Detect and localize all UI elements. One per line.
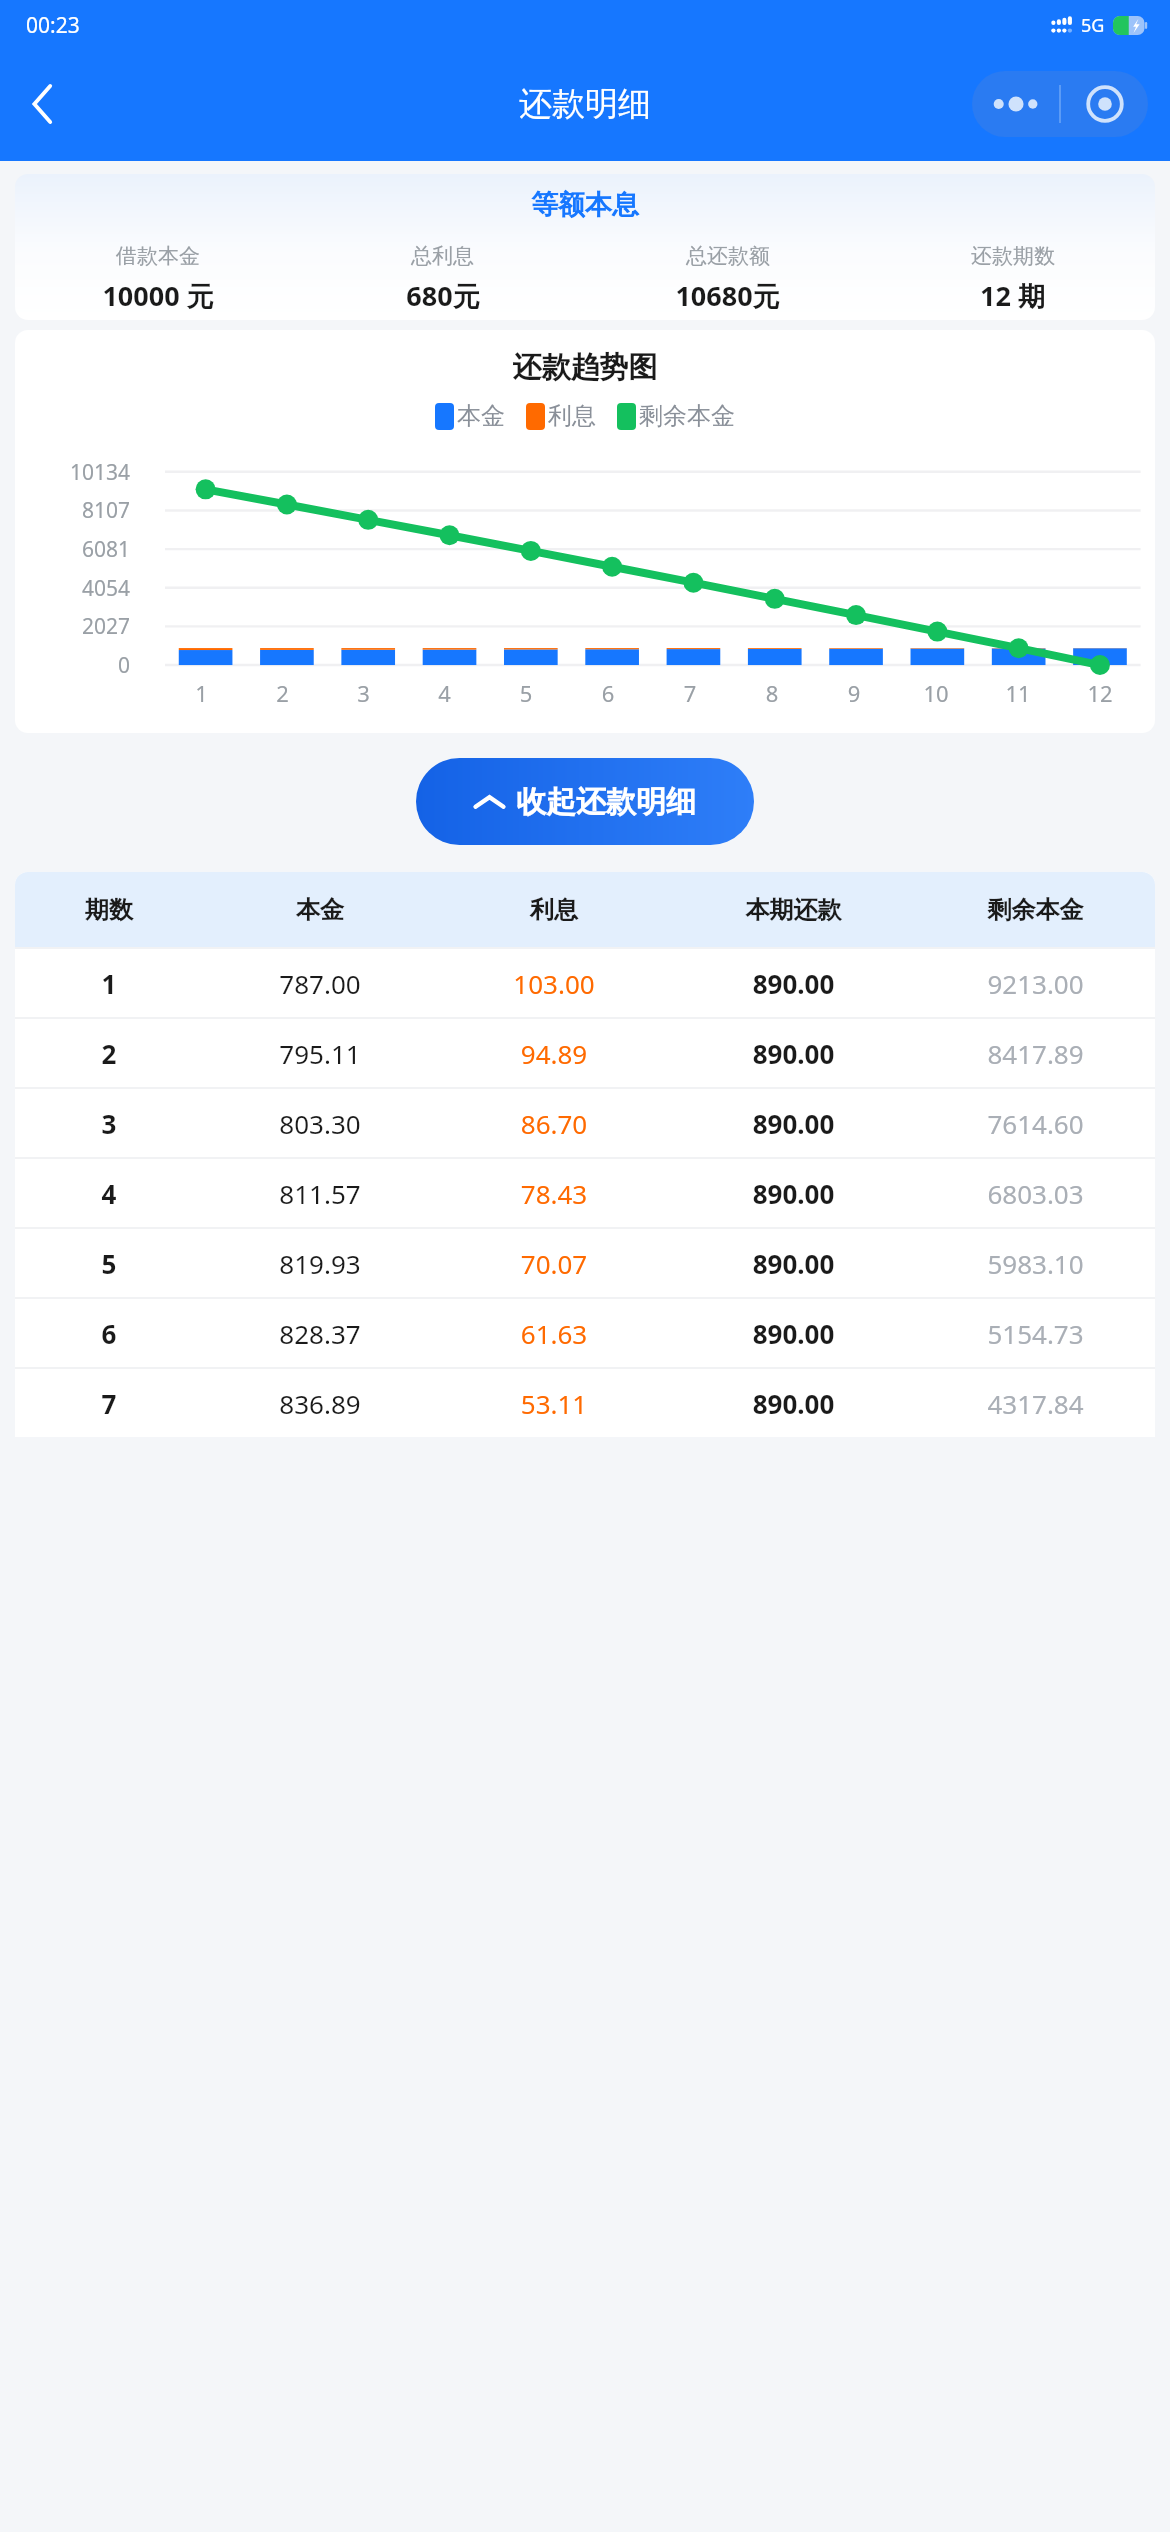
staticText: 86.70	[437, 1106, 671, 1141]
staticText: 4054	[15, 574, 130, 603]
staticText: 78.43	[437, 1176, 671, 1211]
button[interactable]: 4	[15, 1159, 1155, 1227]
staticText: 剩余本金	[639, 401, 735, 431]
staticText: 828.37	[203, 1316, 437, 1351]
staticText: 6	[567, 678, 649, 708]
staticText: 9213.00	[916, 966, 1155, 1001]
staticText: 本金	[203, 895, 437, 925]
button[interactable]: 3	[15, 1089, 1155, 1157]
staticText: 787.00	[203, 966, 437, 1001]
staticText: 53.11	[437, 1386, 671, 1421]
staticText: 4	[15, 1176, 203, 1211]
staticText: 890.00	[671, 1036, 916, 1071]
staticText: 890.00	[671, 1316, 916, 1351]
staticText: 1	[161, 678, 242, 708]
staticText: 5	[485, 678, 567, 708]
staticText: 6081	[15, 535, 130, 564]
staticText: 等额本息	[15, 188, 1155, 222]
staticText: 4317.84	[916, 1386, 1155, 1421]
button[interactable]: Back	[12, 73, 74, 135]
staticText: 本期还款	[671, 895, 916, 925]
staticText: 5154.73	[916, 1316, 1155, 1351]
staticText: 还款趋势图	[15, 349, 1155, 386]
staticText: 8	[731, 678, 813, 708]
button[interactable]: 5	[15, 1229, 1155, 1297]
staticText: 期数	[15, 895, 203, 925]
staticText: 819.93	[203, 1246, 437, 1281]
staticText: 890.00	[671, 966, 916, 1001]
staticText: 8417.89	[916, 1036, 1155, 1071]
staticText: 8107	[15, 496, 130, 525]
staticText: 00:23	[26, 11, 80, 40]
button[interactable]: More options	[972, 71, 1059, 137]
staticText: 收起还款明细	[516, 783, 696, 821]
staticText: 剩余本金	[916, 895, 1155, 925]
staticText: 12 期	[980, 277, 1045, 314]
staticText: 12	[1059, 678, 1141, 708]
button[interactable]: 等额本息	[15, 174, 1155, 320]
staticText: 680元	[406, 277, 480, 314]
button[interactable]: Close mini program	[1061, 71, 1148, 137]
staticText: 本金	[457, 401, 505, 431]
staticText: 5983.10	[916, 1246, 1155, 1281]
staticText: 61.63	[437, 1316, 671, 1351]
staticText: 5	[15, 1246, 203, 1281]
button[interactable]: 本金	[435, 401, 505, 431]
staticText: 3	[15, 1106, 203, 1141]
staticText: 890.00	[671, 1176, 916, 1211]
staticText: 利息	[548, 401, 596, 431]
button[interactable]: 利息	[526, 401, 596, 431]
staticText: 10000 元	[102, 277, 214, 314]
staticText: 3	[323, 678, 404, 708]
staticText: 10680元	[675, 277, 780, 314]
staticText: 890.00	[671, 1106, 916, 1141]
button[interactable]: 剩余本金	[617, 401, 735, 431]
staticText: 6803.03	[916, 1176, 1155, 1211]
staticText: 70.07	[437, 1246, 671, 1281]
staticText: 4	[404, 678, 485, 708]
staticText: 还款期数	[971, 243, 1055, 269]
button[interactable]: 收起还款明细	[416, 758, 754, 845]
staticText: 890.00	[671, 1386, 916, 1421]
staticText: 795.11	[203, 1036, 437, 1071]
staticText: 还款明细	[519, 83, 651, 125]
staticText: 103.00	[437, 966, 671, 1001]
staticText: 811.57	[203, 1176, 437, 1211]
staticText: 10134	[15, 458, 130, 487]
staticText: 890.00	[671, 1246, 916, 1281]
staticText: 0	[15, 651, 130, 680]
staticText: 836.89	[203, 1386, 437, 1421]
staticText: 5G	[1081, 13, 1105, 38]
button[interactable]: 1	[15, 949, 1155, 1017]
staticText: 7	[649, 678, 731, 708]
staticText: 7	[15, 1386, 203, 1421]
staticText: 11	[977, 678, 1059, 708]
staticText: 7614.60	[916, 1106, 1155, 1141]
staticText: 借款本金	[116, 243, 200, 269]
button[interactable]: 7	[15, 1369, 1155, 1437]
staticText: 9	[813, 678, 895, 708]
staticText: 10	[895, 678, 977, 708]
staticText: 2	[15, 1036, 203, 1071]
staticText: 2	[242, 678, 323, 708]
staticText: 2027	[15, 612, 130, 641]
staticText: 利息	[437, 895, 671, 925]
button[interactable]: 6	[15, 1299, 1155, 1367]
staticText: 6	[15, 1316, 203, 1351]
staticText: 1	[15, 966, 203, 1001]
staticText: 总利息	[411, 243, 474, 269]
staticText: 总还款额	[686, 243, 770, 269]
button[interactable]: 2	[15, 1019, 1155, 1087]
staticText: 94.89	[437, 1036, 671, 1071]
staticText: 803.30	[203, 1106, 437, 1141]
